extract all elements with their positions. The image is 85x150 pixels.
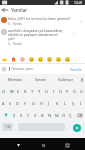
staticText: Yanıtla [13, 42, 22, 46]
staticText: Q [2, 89, 6, 94]
staticText: Ö [62, 113, 66, 118]
button[interactable]: Emoji reaction [45, 55, 54, 63]
button[interactable]: Home [37, 139, 49, 150]
staticText: Yanıtlar [11, 7, 28, 13]
staticText: G [32, 101, 35, 106]
staticText: Yanıtla [70, 67, 82, 72]
button[interactable]: Emoji reaction [18, 55, 27, 63]
button[interactable]: Emoji reaction [27, 55, 36, 63]
button[interactable]: M [53, 109, 60, 121]
button[interactable]: Q [0, 85, 8, 97]
button[interactable]: S [7, 97, 14, 109]
button[interactable]: L [61, 97, 69, 109]
staticText: O [59, 89, 63, 94]
staticText: I [80, 101, 82, 106]
staticText: U [45, 89, 48, 94]
button[interactable]: K [53, 97, 61, 109]
button[interactable]: Like [78, 18, 84, 24]
button[interactable]: J [45, 97, 53, 109]
button[interactable]: Tamam [28, 74, 53, 85]
button[interactable]: Send [71, 122, 82, 133]
button[interactable]: Ç [67, 109, 74, 121]
button[interactable]: , [13, 121, 18, 134]
button[interactable]: Shift [0, 109, 11, 121]
staticText: J [48, 101, 50, 106]
button[interactable]: C [25, 109, 32, 121]
staticText: S [9, 101, 12, 106]
button[interactable]: Y [36, 85, 43, 97]
staticText: A [2, 101, 5, 106]
button[interactable]: Emoji reaction [9, 55, 18, 63]
staticText: Gülse_4301 bir an önce bu kısmı getireci… [8, 17, 78, 21]
button[interactable]: Like [70, 30, 76, 36]
staticText: 1s [8, 42, 11, 46]
staticText: 1s [8, 22, 11, 26]
button[interactable]: Merhaba [2, 74, 28, 85]
button[interactable]: Ş [69, 97, 77, 109]
button[interactable]: Voice input [78, 74, 85, 85]
staticText: H [40, 101, 43, 106]
button[interactable]: Backspace [74, 109, 85, 121]
staticText: P [66, 89, 69, 94]
button[interactable]: Emoji reaction [0, 55, 9, 63]
button[interactable]: A [0, 97, 7, 109]
staticText: Y [38, 89, 41, 94]
staticText: M [55, 113, 59, 118]
button[interactable]: I [50, 85, 57, 97]
button[interactable]: F [21, 97, 29, 109]
button[interactable]: B [39, 109, 46, 121]
staticText: D [16, 101, 19, 106]
staticText: X [20, 113, 23, 118]
button[interactable]: Kullanıyor [53, 74, 78, 85]
staticText: Yanıtınızı yazın [11, 67, 69, 71]
button[interactable]: Ö [60, 109, 67, 121]
button[interactable]: Ü [78, 85, 85, 97]
button[interactable]: Ğ [71, 85, 78, 97]
button[interactable]: G [29, 97, 37, 109]
button[interactable]: R [22, 85, 29, 97]
staticText: R [24, 89, 27, 94]
button[interactable]: N [46, 109, 53, 121]
staticText: ?123 [5, 125, 11, 129]
button[interactable]: Emoji reaction [63, 55, 72, 63]
staticText: Ş [72, 101, 75, 106]
button[interactable]: Emoji reaction [54, 55, 63, 63]
staticText: Kullanıyor [58, 78, 74, 82]
staticText: Tamam [35, 78, 47, 82]
button[interactable]: H [37, 97, 45, 109]
staticText: . [67, 125, 68, 130]
button[interactable]: P [64, 85, 71, 97]
staticText: Ç [69, 113, 72, 118]
staticText: K [56, 101, 59, 106]
staticText: C [27, 113, 30, 118]
staticText: B [41, 113, 44, 118]
staticText: Yanıtla [13, 22, 22, 26]
staticText: V [34, 113, 37, 118]
staticText: F [24, 101, 27, 106]
button[interactable]: O [57, 85, 64, 97]
staticText: , [15, 125, 16, 130]
button[interactable]: Recents [61, 139, 73, 150]
button[interactable]: U [43, 85, 50, 97]
button[interactable]: I [77, 97, 85, 109]
button[interactable]: ?123 [2, 123, 13, 131]
button[interactable]: W [8, 85, 15, 97]
staticText: I [53, 89, 55, 94]
button[interactable]: D [14, 97, 21, 109]
button[interactable]: V [32, 109, 39, 121]
button[interactable]: X [18, 109, 25, 121]
staticText: T [31, 89, 34, 94]
staticText: L [64, 101, 67, 106]
staticText: Merhaba [8, 78, 22, 82]
button[interactable]: Back [12, 139, 24, 150]
button[interactable]: Back [0, 5, 10, 15]
button[interactable]: E [15, 85, 22, 97]
staticText: W [10, 89, 14, 94]
button[interactable]: Emoji reaction [36, 55, 45, 63]
button[interactable]: T [29, 85, 36, 97]
staticText: E [17, 89, 20, 94]
button[interactable]: Z [11, 109, 18, 121]
button[interactable]: Yanıtla [69, 67, 83, 72]
